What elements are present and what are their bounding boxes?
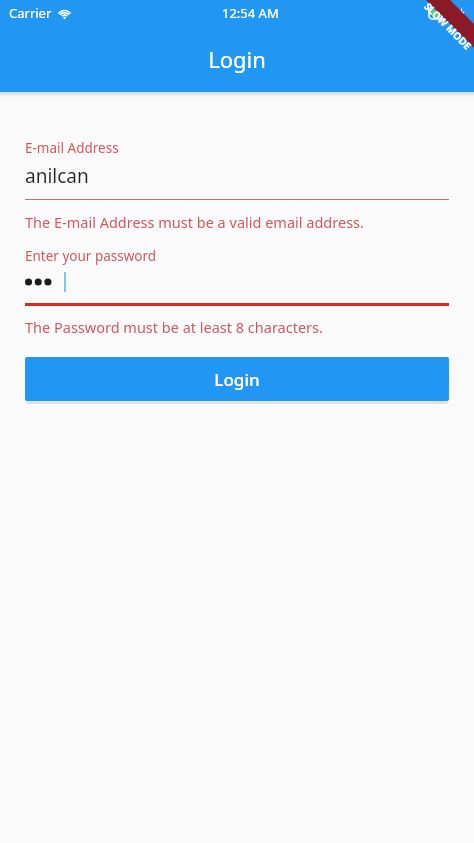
staticText: 12:54 AM <box>222 4 279 22</box>
staticText: SLOW MODE <box>421 0 474 53</box>
staticText: Login <box>208 44 266 74</box>
staticText: anilcan <box>25 163 89 189</box>
button[interactable]: Enter your password <box>25 247 157 265</box>
button[interactable]: Login <box>25 357 449 401</box>
button[interactable] <box>25 269 449 295</box>
staticText: Login <box>214 368 260 391</box>
staticText: Carrier <box>9 4 52 22</box>
button[interactable]: E-mail Address <box>25 139 119 157</box>
staticText: The E-mail Address must be a valid email… <box>25 212 364 232</box>
staticText: The Password must be at least 8 characte… <box>25 317 323 337</box>
button[interactable]: anilcan <box>25 162 449 190</box>
other: Slow mode indicator <box>394 0 474 80</box>
